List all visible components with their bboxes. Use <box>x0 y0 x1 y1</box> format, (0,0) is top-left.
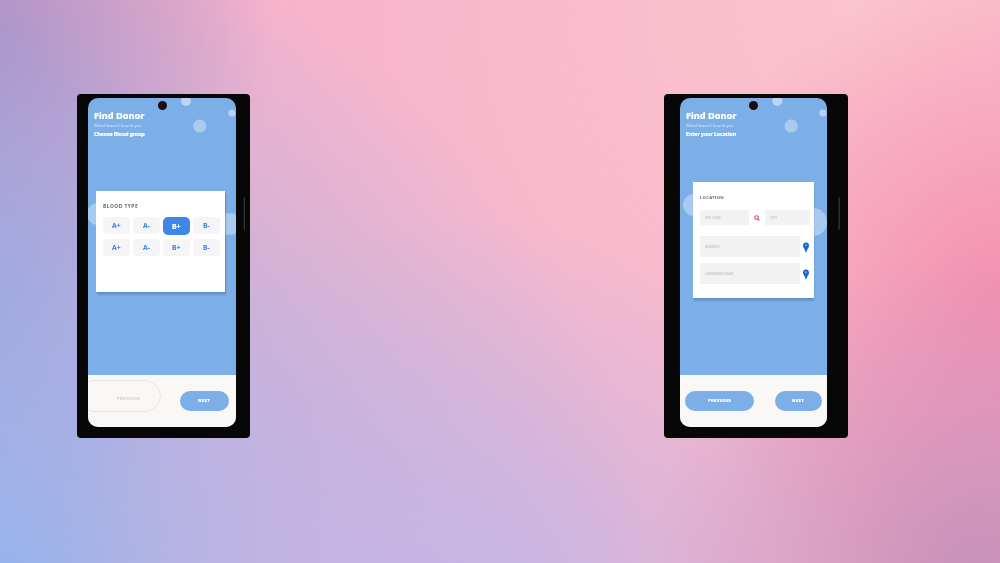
button[interactable]: B- <box>193 239 220 256</box>
staticText: A+ <box>112 243 121 252</box>
staticText: PREVIOUS <box>708 398 732 404</box>
staticText: ADDRESS <box>705 244 720 249</box>
staticText: A- <box>143 221 150 230</box>
button[interactable]: B+ <box>163 217 190 235</box>
button[interactable]: CITY <box>765 210 810 225</box>
other: Search <box>754 215 760 221</box>
button[interactable]: ADDRESS <box>700 236 800 257</box>
button[interactable]: A- <box>133 217 160 234</box>
button[interactable]: A+ <box>103 239 130 256</box>
staticText: Enter your Location <box>686 131 736 138</box>
staticText: Find Donor <box>94 109 145 122</box>
button[interactable]: B+ <box>163 239 190 256</box>
button[interactable]: NEXT <box>775 391 822 411</box>
staticText: LOCATION <box>700 195 725 201</box>
staticText: NEXT <box>792 398 805 404</box>
other: Location <box>803 268 809 280</box>
staticText: A+ <box>112 221 121 230</box>
staticText: B- <box>203 221 210 230</box>
staticText: B+ <box>172 243 181 252</box>
button[interactable]: B- <box>193 217 220 234</box>
staticText: Choose Blood group <box>94 131 145 138</box>
staticText: NEXT <box>198 398 211 404</box>
staticText: A- <box>143 243 150 252</box>
staticText: B- <box>203 243 210 252</box>
staticText: CITY <box>770 215 778 220</box>
staticText: PREVIOUS <box>117 396 141 402</box>
staticText: LANDMARK NEAR <box>705 271 734 276</box>
staticText: B+ <box>172 222 181 231</box>
button[interactable]: PREVIOUS <box>685 391 754 411</box>
button[interactable]: A- <box>133 239 160 256</box>
button[interactable]: LANDMARK NEAR <box>700 263 800 284</box>
staticText: Blood doesn't bound you <box>94 123 142 128</box>
button[interactable]: A+ <box>103 217 130 234</box>
button[interactable]: PIN CODE <box>700 210 749 225</box>
staticText: PIN CODE <box>705 215 721 220</box>
staticText: Find Donor <box>686 109 737 122</box>
button[interactable]: NEXT <box>180 391 229 411</box>
other: Location <box>803 241 809 253</box>
button[interactable]: PREVIOUS <box>88 380 161 412</box>
staticText: BLOOD TYPE <box>103 203 139 210</box>
staticText: Blood doesn't bound you <box>686 123 734 128</box>
